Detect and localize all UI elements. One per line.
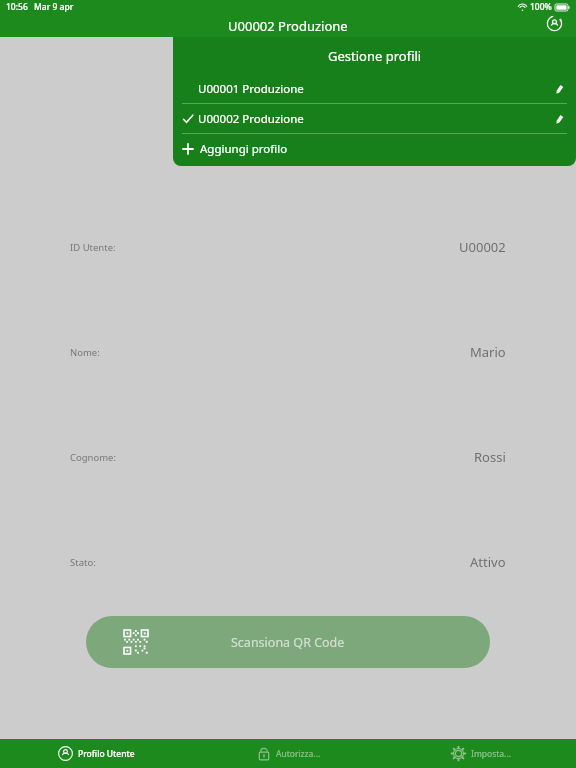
staticText: Stato: [70, 556, 96, 569]
button[interactable]: ID Utente: [0, 232, 576, 262]
button[interactable]: Imposta... [384, 739, 576, 768]
staticText: Mar 9 apr [34, 1, 74, 13]
staticText: 100% [530, 1, 552, 13]
button[interactable]: Scansiona QR Code [86, 616, 490, 668]
staticText: U00001 Produzione [198, 81, 304, 97]
button[interactable]: Aggiungi profilo [173, 134, 576, 163]
staticText: Attivo [470, 553, 506, 571]
staticText: Profilo Utente [78, 748, 135, 760]
staticText: Autorizza... [276, 748, 321, 760]
staticText: Mario [470, 343, 506, 361]
staticText: Cognome: [70, 451, 116, 464]
staticText: Imposta... [471, 748, 511, 760]
button[interactable]: Stato: [0, 547, 576, 577]
staticText: Scansiona QR Code [231, 634, 345, 651]
button[interactable]: Autorizza... [192, 739, 384, 768]
staticText: U00002 Produzione [198, 111, 304, 127]
button[interactable]: Sincronizza profilo [542, 11, 566, 35]
staticText: U00002 Produzione [228, 17, 348, 35]
staticText: Nome: [70, 346, 100, 359]
button[interactable]: Profilo Utente [0, 739, 192, 768]
staticText: Aggiungi profilo [200, 141, 288, 157]
button[interactable]: Cognome: [0, 442, 576, 472]
staticText: 10:56 [6, 1, 28, 13]
staticText: U00002 [459, 238, 506, 256]
button[interactable]: U00002 Produzione [173, 104, 576, 133]
button[interactable]: Nome: [0, 337, 576, 367]
button[interactable]: U00001 Produzione [173, 74, 576, 103]
staticText: Rossi [474, 448, 506, 466]
staticText: ID Utente: [70, 241, 116, 254]
button[interactable]: Modifica profilo [551, 111, 567, 127]
staticText: Gestione profili [328, 47, 422, 65]
button[interactable]: Modifica profilo [551, 81, 567, 97]
